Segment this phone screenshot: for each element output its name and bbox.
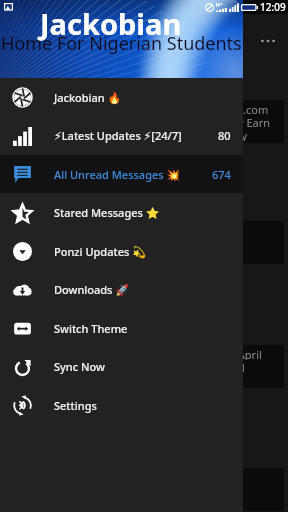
button[interactable]: Ponzi Updates 💫	[0, 232, 243, 270]
staticText: 80	[218, 128, 231, 143]
staticText: Switch Theme	[54, 321, 128, 336]
button[interactable]: More options	[255, 28, 281, 54]
button[interactable]: Sync Now	[0, 347, 243, 386]
staticText: All Unread Messages 💥	[54, 167, 181, 182]
staticText: NYSC Batch B Stream 2 Registration May A…	[26, 347, 262, 360]
button[interactable]: All Unread Messages 💥	[0, 155, 243, 193]
staticText: 12:09	[260, 0, 286, 14]
button[interactable]: NYSC Batch B Stream 2 Registration May A…	[16, 345, 284, 388]
button[interactable]: Best Ways To Make Money www.jackobian.co…	[16, 100, 284, 143]
staticText: Money Online Legitimately Step By Step B…	[26, 128, 248, 141]
staticText: Top 10 Skills That Pay Well I	[26, 223, 168, 236]
staticText: Prospective Corps Members Must [find	[26, 373, 227, 386]
staticText: Stared Messages ⭐	[54, 205, 160, 220]
staticText: Sync Now	[54, 359, 105, 374]
staticText: Best Ways To Make Money www.jackobian.co…	[26, 102, 269, 115]
staticText: Home For Nigerian Students	[1, 31, 242, 56]
button[interactable]: Switch Theme	[0, 309, 243, 347]
staticText: 674	[212, 167, 231, 182]
button[interactable]: Downloads 🚀	[0, 270, 243, 309]
button[interactable]: Stared Messages ⭐	[0, 193, 243, 232]
button[interactable]: Jackobian 🔥	[0, 78, 243, 116]
button[interactable]: Settings	[0, 386, 243, 424]
button[interactable]: Win Cash Prizes Worth Over This 5k	[16, 468, 284, 511]
staticText: Ponzi Updates 💫	[54, 244, 146, 259]
staticText: Settings	[54, 398, 97, 413]
staticText: Jackobian	[40, 4, 182, 43]
button[interactable]: ⚡️Latest Updates ⚡️[24/7]	[0, 116, 243, 155]
staticText: Portal Opens Soon For All Qualified Clos…	[26, 360, 245, 373]
staticText: Income And Never Be Broke Payment If	[26, 249, 231, 262]
staticText: Jackobian 🔥	[54, 90, 122, 105]
staticText: Downloads 🚀	[54, 282, 130, 297]
staticText: ⚡️Latest Updates ⚡️[24/7]	[54, 128, 182, 143]
button[interactable]: Top 10 Skills That Pay Well I	[16, 221, 284, 264]
staticText: How Students In Nigeria Can Make Money E…	[26, 115, 271, 128]
staticText: Learn These Skills To Boost Up Your	[26, 236, 210, 249]
